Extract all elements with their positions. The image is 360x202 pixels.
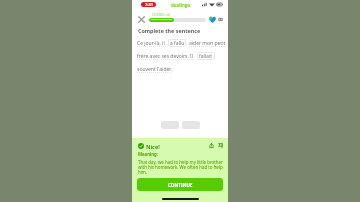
staticText: Meaning:	[138, 151, 158, 157]
button[interactable]: aider mon petit	[189, 40, 226, 47]
staticText: aider mon petit	[189, 40, 226, 47]
staticText: COMBO x6	[152, 12, 171, 16]
staticText: frère avec ses devoirs. Il	[137, 53, 194, 60]
staticText: Complete the sentence	[138, 27, 201, 34]
button[interactable]: fallait	[197, 52, 215, 60]
staticText: fallait	[199, 53, 213, 60]
button[interactable]: CONTINUE	[137, 178, 223, 191]
staticText: That day, we had to help my little broth…	[138, 159, 223, 175]
button[interactable]: Close lesson	[138, 16, 145, 23]
staticText: CONTINUE	[168, 182, 193, 188]
staticText: 7:31	[145, 2, 153, 7]
button[interactable]: Report	[218, 143, 223, 148]
staticText: Nice!	[146, 143, 160, 150]
button[interactable]: Used word tile	[161, 121, 179, 129]
staticText: a fallu	[170, 40, 185, 47]
button[interactable]: frère avec ses devoirs. Il	[137, 53, 194, 60]
button[interactable]: Ce jour-là, il	[137, 40, 165, 47]
button[interactable]: Share	[209, 143, 214, 148]
button[interactable]: souvent l'aider.	[137, 66, 172, 73]
staticText: Ce jour-là, il	[137, 40, 165, 47]
staticText: souvent l'aider.	[137, 66, 172, 73]
button[interactable]: a fallu	[168, 39, 186, 47]
button[interactable]: Used word tile	[182, 121, 200, 129]
staticText: duolingo	[171, 2, 191, 8]
